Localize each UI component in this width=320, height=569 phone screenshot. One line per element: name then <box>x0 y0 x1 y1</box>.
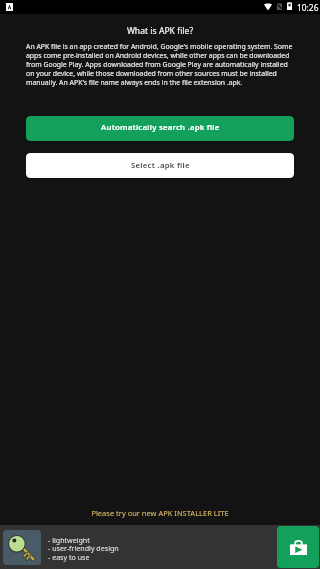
staticText: Please try our new APK INSTALLER LITE <box>0 508 320 518</box>
button[interactable]: Automatically search .apk file <box>26 116 294 141</box>
staticText: An APK file is an app created for Androi… <box>26 42 296 87</box>
button[interactable]: Select .apk file <box>26 153 294 178</box>
button[interactable]: Open in Google Play <box>277 526 319 568</box>
staticText: What is APK file? <box>0 25 320 37</box>
staticText: 10:26 <box>297 2 319 13</box>
staticText: Select .apk file <box>131 160 190 171</box>
staticText: Automatically search .apk file <box>101 122 220 133</box>
staticText: - lightweight - user-friendly design - e… <box>48 535 119 562</box>
button[interactable]: App icon <box>3 530 41 565</box>
